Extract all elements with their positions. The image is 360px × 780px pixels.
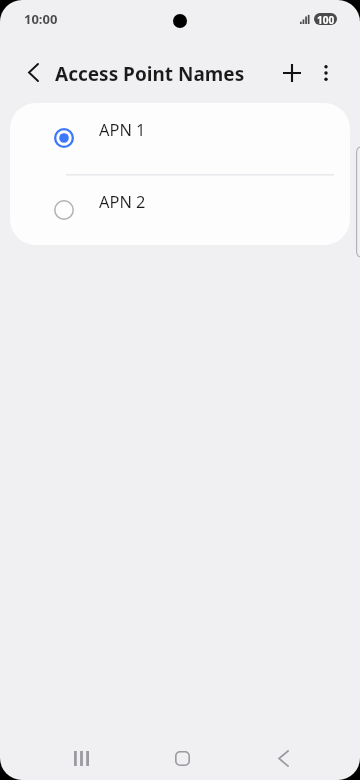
staticText: Access Point Names [55, 61, 245, 87]
button[interactable]: Back [259, 732, 307, 780]
staticText: 10:00 [24, 10, 58, 28]
button[interactable]: More options [306, 53, 346, 93]
button[interactable]: Back [13, 53, 53, 93]
button[interactable]: APN 1 [10, 103, 350, 173]
button[interactable]: Add [272, 53, 312, 93]
button[interactable]: Recents [57, 732, 105, 780]
staticText: 100 [317, 13, 335, 25]
button[interactable]: Home [158, 732, 206, 780]
staticText: APN 2 [99, 190, 146, 212]
staticText: APN 1 [99, 118, 146, 140]
button[interactable]: APN 2 [10, 175, 350, 245]
